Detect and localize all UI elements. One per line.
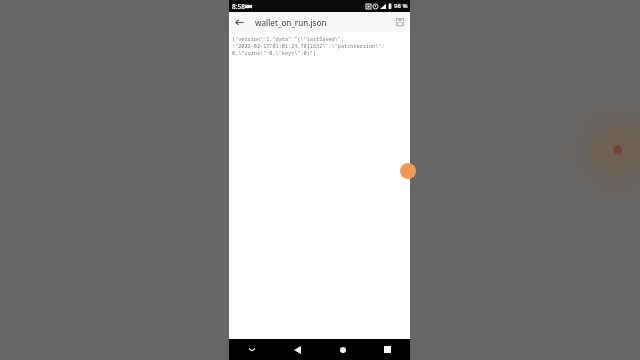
staticText: 98 %	[394, 2, 408, 10]
button[interactable]: Back	[275, 339, 320, 360]
button[interactable]: Navigate up	[229, 12, 249, 32]
staticText: wallet_on_run.json	[255, 17, 390, 28]
button[interactable]: Recent apps	[365, 339, 410, 360]
button[interactable]: Home	[320, 339, 365, 360]
staticText: \"2022-02-15T01:01:24.781183Z\",\"patchV…	[232, 42, 385, 49]
button[interactable]: Save	[390, 12, 410, 32]
staticText: 0,\"coins\":0,\"keys\":0}")	[232, 49, 317, 56]
staticText: {"version":1,"data":"{\"lastSaved\":	[232, 35, 345, 42]
staticText: 8:58	[232, 2, 245, 11]
button[interactable]: Hide keyboard	[229, 339, 275, 360]
